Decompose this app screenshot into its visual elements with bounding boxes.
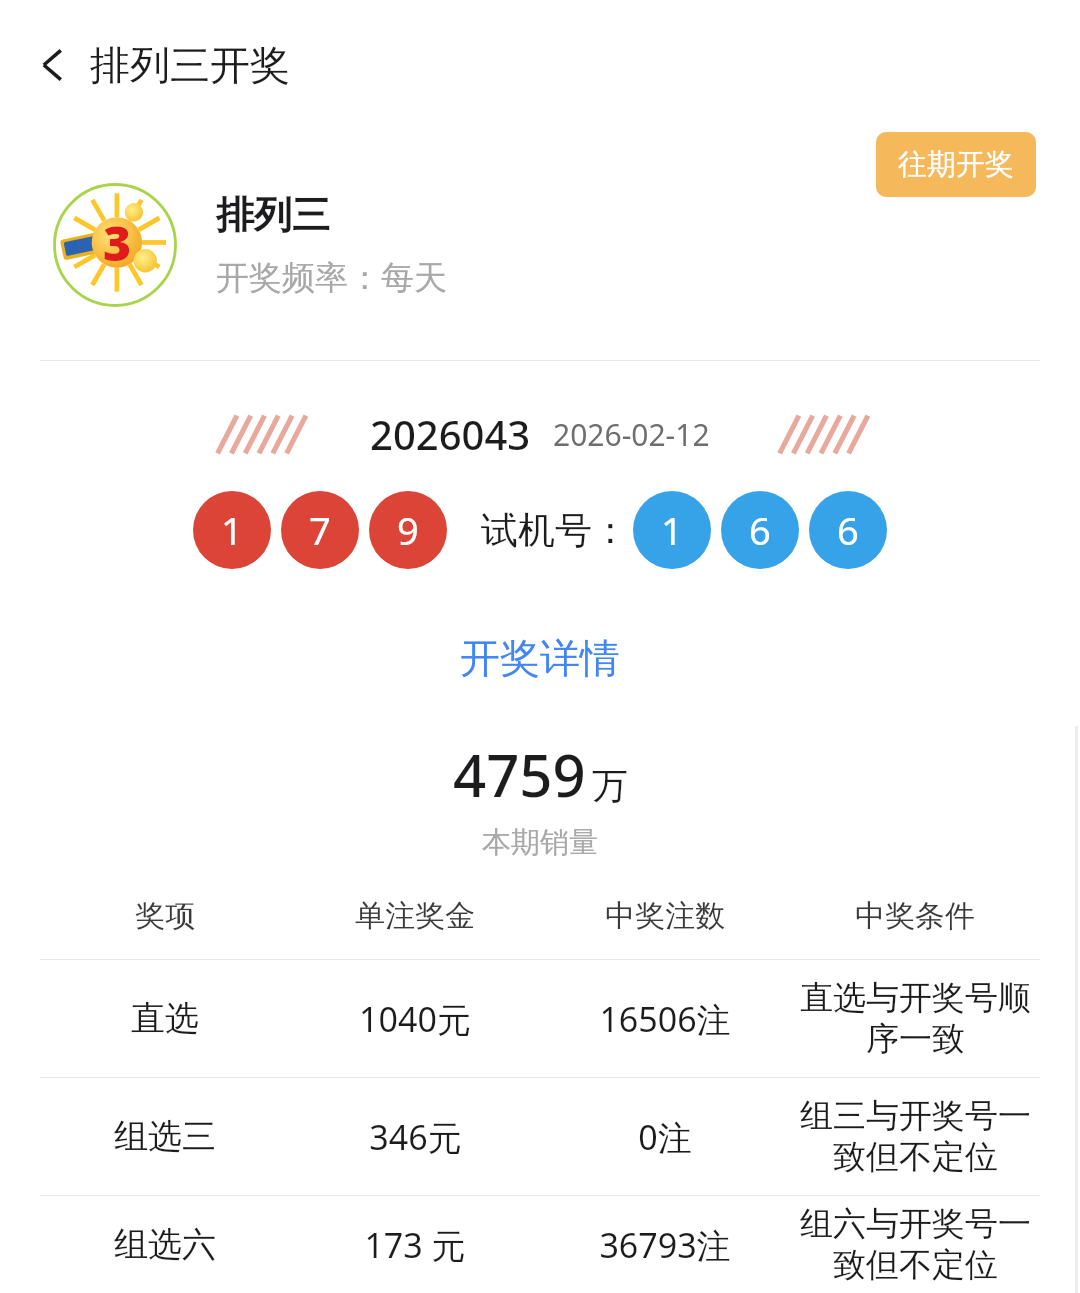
staticText: 开奖详情	[460, 633, 620, 683]
staticText: 1040元	[359, 996, 471, 1042]
staticText: 试机号：	[481, 507, 629, 554]
staticText: 173 元	[364, 1222, 466, 1268]
staticText: 1	[221, 504, 243, 556]
staticText: 16506注	[599, 996, 731, 1042]
staticText: 中奖条件	[855, 897, 975, 935]
staticText: 组三与开奖号一 致但不定位	[800, 1095, 1031, 1178]
staticText: 开奖频率：每天	[216, 257, 447, 299]
staticText: 单注奖金	[355, 897, 475, 935]
staticText: 本期销量	[482, 824, 598, 861]
button[interactable]: 组选六	[0, 1196, 1080, 1293]
button[interactable]: 直选	[0, 960, 1080, 1077]
staticText: 6	[837, 504, 859, 556]
staticText: 346元	[369, 1114, 462, 1160]
staticText: 排列三开奖	[90, 40, 290, 90]
button[interactable]: 往期开奖	[876, 132, 1036, 197]
staticText: 组六与开奖号一 致但不定位	[800, 1203, 1031, 1286]
staticText: 3	[103, 210, 132, 275]
staticText: 组选六	[114, 1223, 216, 1266]
staticText: 中奖注数	[605, 897, 725, 935]
button[interactable]: 开奖详情	[444, 627, 636, 689]
staticText: 奖项	[135, 897, 195, 935]
staticText: 36793注	[599, 1222, 731, 1268]
staticText: 往期开奖	[898, 146, 1014, 183]
staticText: 万	[592, 763, 628, 808]
staticText: 直选	[131, 997, 199, 1040]
staticText: 组选三	[114, 1115, 216, 1158]
staticText: 2026043	[370, 407, 531, 461]
staticText: 9	[397, 504, 419, 556]
staticText: 直选与开奖号顺 序一致	[800, 977, 1031, 1060]
button[interactable]: 组选三	[0, 1078, 1080, 1195]
staticText: 4759	[453, 735, 586, 814]
staticText: 排列三	[216, 191, 330, 239]
staticText: 2026-02-12	[553, 414, 710, 455]
staticText: 1	[661, 504, 683, 556]
staticText: 6	[749, 504, 771, 556]
staticText: 0注	[638, 1114, 692, 1160]
staticText: 7	[309, 504, 331, 556]
button[interactable]: Back	[26, 37, 82, 93]
